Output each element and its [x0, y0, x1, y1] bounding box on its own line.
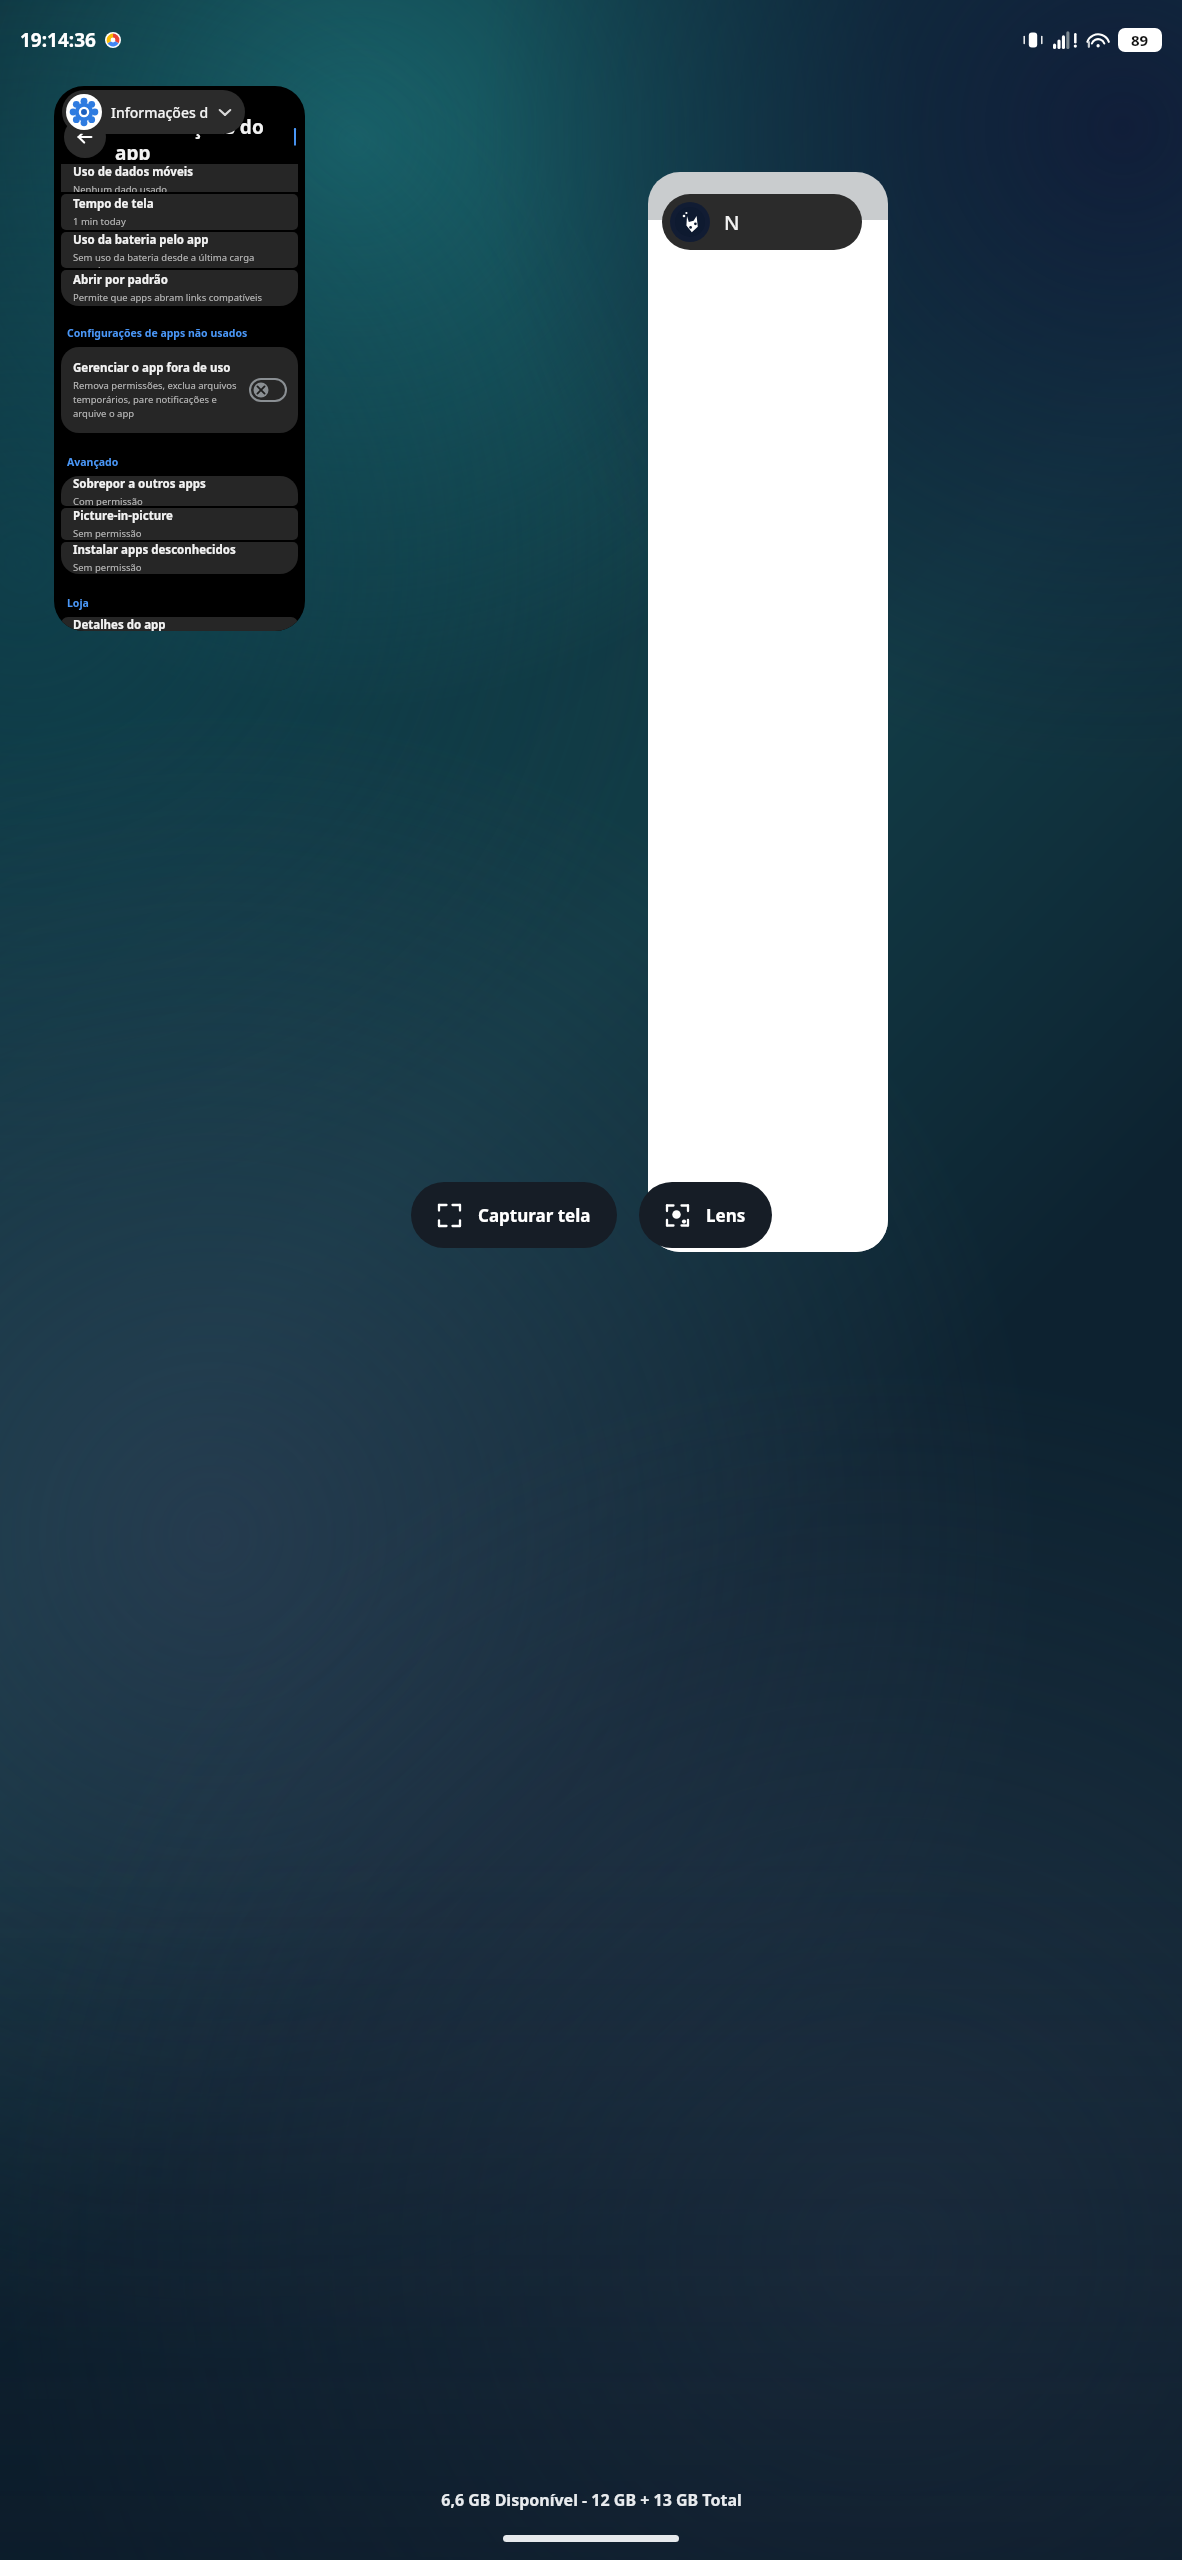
staticText: Sem permissão — [73, 527, 142, 540]
button[interactable]: N — [648, 172, 888, 1252]
staticText: Avançado — [67, 455, 119, 469]
staticText: Abrir por padrão — [73, 272, 168, 288]
button[interactable]: Uso da bateria pelo app — [61, 232, 298, 268]
staticText: Sem uso da bateria desde a última carga … — [73, 251, 286, 268]
staticText: Instalar apps desconhecidos — [73, 542, 236, 558]
staticText: Loja — [67, 596, 89, 610]
staticText: Gerenciar o app fora de uso — [73, 360, 231, 376]
staticText: Detalhes do app — [73, 617, 166, 631]
staticText: Tempo de tela — [73, 196, 154, 212]
button[interactable]: Sobrepor a outros apps — [61, 476, 298, 506]
staticText: Informações d — [111, 103, 209, 122]
button[interactable]: Capturar tela — [411, 1182, 617, 1248]
button[interactable]: Tempo de tela — [61, 194, 298, 230]
staticText: Picture-in-picture — [73, 508, 173, 524]
button[interactable]: Alternar — [250, 379, 286, 401]
staticText: 6,6 GB Disponível - 12 GB + 13 GB Total — [441, 2489, 742, 2511]
button[interactable]: Abrir por padrão — [61, 270, 298, 306]
button[interactable]: Lens — [639, 1182, 772, 1248]
staticText: Capturar tela — [478, 1204, 591, 1227]
button[interactable]: Voltar — [64, 116, 106, 158]
button[interactable]: Instalar apps desconhecidos — [61, 542, 298, 574]
staticText: 19:14:36 — [20, 27, 96, 53]
staticText: Nenhum dado usado — [73, 183, 168, 192]
staticText: Uso da bateria pelo app — [73, 232, 209, 248]
button[interactable]: Picture-in-picture — [61, 508, 298, 540]
button[interactable]: Gerenciar o app fora de uso — [61, 347, 298, 433]
staticText: Informações do app — [115, 114, 295, 160]
button[interactable]: Uso de dados móveis — [61, 164, 298, 192]
staticText: Lens — [706, 1204, 746, 1227]
staticText: Uso de dados móveis — [73, 164, 193, 180]
button[interactable]: Informações d — [62, 90, 245, 134]
staticText: Configurações de apps não usados — [67, 326, 248, 340]
staticText: Remova permissões, exclua arquivos tempo… — [73, 379, 242, 420]
button[interactable]: Detalhes do app — [61, 617, 298, 631]
staticText: 89 — [1131, 30, 1149, 50]
staticText: Com permissão — [73, 495, 143, 506]
staticText: N — [724, 209, 740, 236]
staticText: 1 min today — [73, 215, 126, 228]
staticText: Sobrepor a outros apps — [73, 476, 206, 492]
staticText: Permite que apps abram links compatíveis — [73, 291, 263, 304]
staticText: Sem permissão — [73, 561, 142, 574]
